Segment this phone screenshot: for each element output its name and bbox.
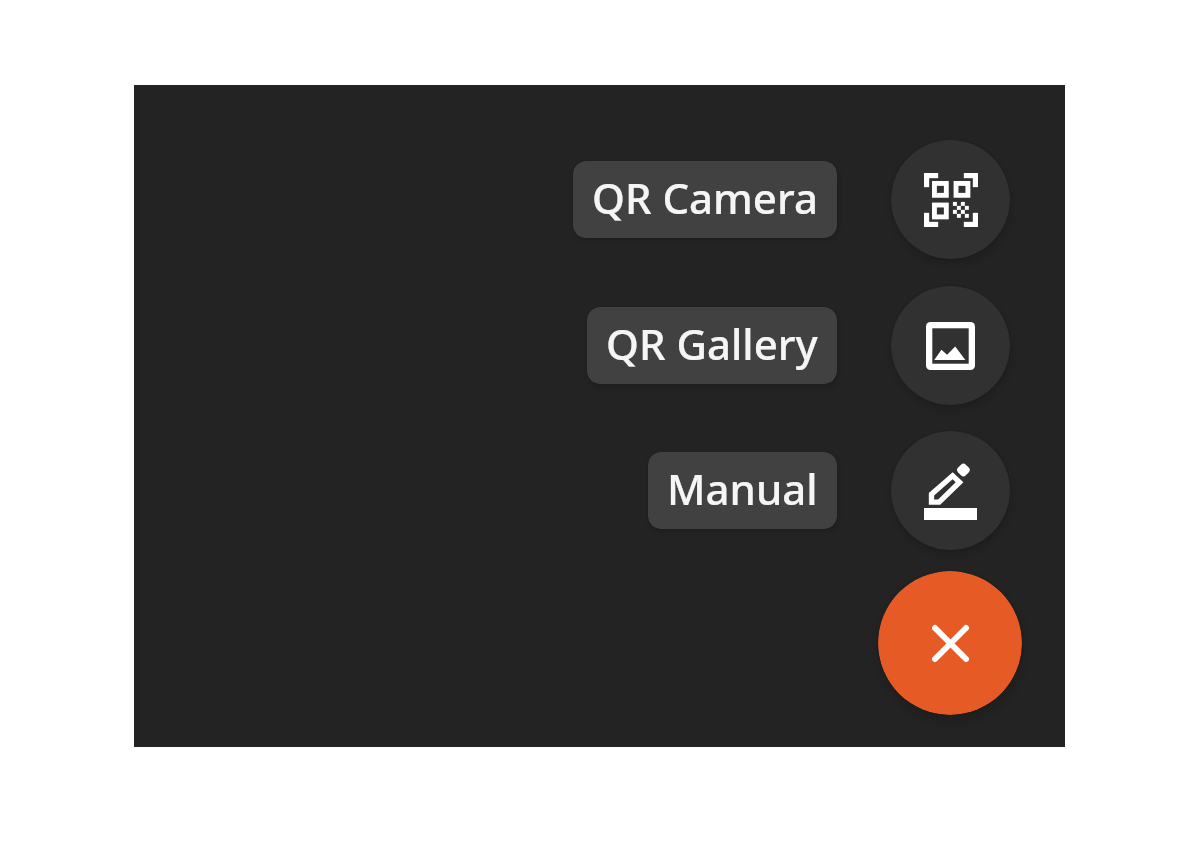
staticText: QR Gallery bbox=[606, 315, 818, 372]
staticText: QR Camera bbox=[592, 169, 818, 226]
button[interactable]: Scan QR code with the camera bbox=[891, 140, 1010, 259]
button[interactable]: Close the actions menu bbox=[878, 571, 1022, 715]
button[interactable]: QR Gallery bbox=[587, 307, 837, 384]
button[interactable]: Enter the code manually bbox=[891, 431, 1010, 550]
button[interactable]: Pick a QR code from the gallery bbox=[891, 286, 1010, 405]
staticText: Manual bbox=[667, 460, 818, 517]
button[interactable]: Manual bbox=[648, 452, 837, 529]
button[interactable]: QR Camera bbox=[573, 161, 837, 238]
